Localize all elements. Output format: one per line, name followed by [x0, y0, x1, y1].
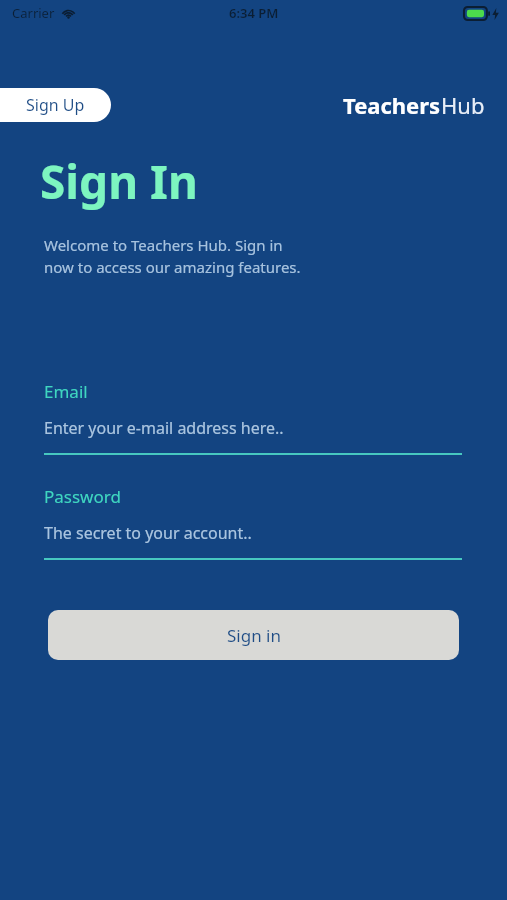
staticText: Carrier [12, 4, 55, 22]
staticText: Sign In [40, 150, 198, 213]
staticText: The secret to your account.. [44, 522, 252, 544]
staticText: Sign in [227, 624, 281, 647]
staticText: Sign Up [26, 94, 85, 116]
staticText: Welcome to Teachers Hub. Sign in now to … [44, 235, 301, 278]
staticText: Enter your e-mail address here.. [44, 417, 284, 439]
button[interactable]: Sign in [48, 610, 459, 660]
staticText: Teachers [343, 90, 441, 120]
button[interactable]: Teachers [343, 90, 485, 120]
button[interactable]: Password [44, 485, 462, 560]
staticText: Hub [441, 90, 485, 120]
button[interactable]: Sign Up [0, 88, 111, 122]
staticText: Email [44, 380, 88, 403]
button[interactable]: Email [44, 380, 462, 455]
staticText: Password [44, 485, 121, 508]
staticText: 6:34 PM [229, 4, 279, 22]
